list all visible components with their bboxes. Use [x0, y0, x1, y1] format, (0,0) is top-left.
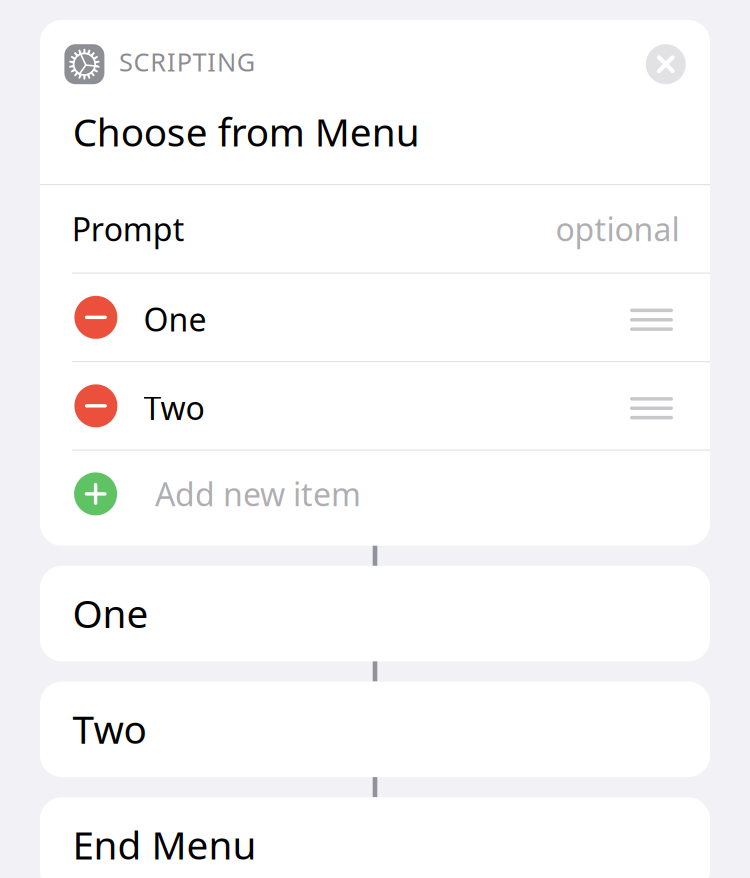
staticText: End Menu — [73, 819, 257, 870]
button[interactable]: Two — [40, 682, 710, 777]
button[interactable]: Reorder Two — [630, 394, 673, 417]
staticText: Add new item — [155, 473, 361, 515]
button[interactable]: End Menu — [40, 797, 710, 878]
button[interactable]: Prompt — [40, 185, 710, 272]
staticText: optional — [555, 208, 679, 250]
staticText: Two — [73, 703, 147, 754]
button[interactable]: One — [40, 566, 710, 661]
button[interactable]: Close — [646, 44, 686, 84]
staticText: One — [73, 587, 149, 639]
staticText: Prompt — [72, 208, 185, 250]
button[interactable]: Add item — [74, 472, 117, 515]
button[interactable]: Add new item — [40, 451, 710, 546]
staticText: SCRIPTING — [119, 45, 255, 78]
staticText: One — [144, 298, 207, 340]
button[interactable]: Reorder One — [630, 306, 673, 329]
button[interactable]: Delete One — [74, 296, 117, 339]
button[interactable]: One — [40, 274, 710, 361]
button[interactable]: Delete Two — [74, 384, 117, 427]
staticText: Choose from Menu — [73, 106, 420, 157]
button[interactable]: Two — [40, 362, 710, 449]
staticText: Two — [144, 386, 205, 429]
